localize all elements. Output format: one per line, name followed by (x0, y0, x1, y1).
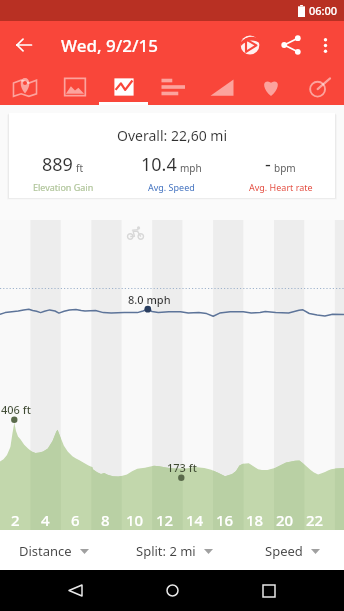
staticText: 06:00 (309, 3, 338, 18)
staticText: 18 (246, 510, 264, 530)
staticText: Overall: 22,60 mi (9, 126, 335, 145)
staticText: - (265, 152, 271, 177)
button[interactable]: Back (0, 21, 48, 69)
button[interactable]: More options (308, 28, 342, 62)
button[interactable]: Heart rate (246, 69, 295, 105)
staticText: 22 (306, 510, 324, 530)
staticText: 12 (156, 510, 174, 530)
staticText: Elevation Gain (33, 181, 94, 193)
staticText: Distance (19, 542, 72, 560)
button[interactable]: Recents (247, 570, 291, 611)
staticText: Avg. Heart rate (249, 181, 313, 193)
staticText: 8 (101, 510, 110, 530)
button[interactable]: Splits (148, 69, 197, 105)
staticText: 2 (11, 510, 20, 530)
staticText: 889 (42, 152, 73, 177)
staticText: Avg. Speed (148, 181, 195, 193)
staticText: Split: 2 mi (136, 542, 196, 560)
staticText: 6 (71, 510, 80, 530)
staticText: 14 (186, 510, 204, 530)
button[interactable]: Replay route (226, 21, 274, 69)
staticText: mph (180, 161, 202, 175)
button[interactable]: Elevation (197, 69, 246, 105)
button[interactable]: Share (274, 28, 308, 62)
staticText: ft (76, 161, 84, 175)
staticText: 4 (41, 510, 50, 530)
button[interactable]: Map (0, 69, 50, 105)
staticText: Speed (265, 542, 303, 560)
button[interactable]: Back (53, 570, 97, 611)
staticText: 10.4 (141, 152, 177, 177)
staticText: 20 (276, 510, 294, 530)
staticText: Wed, 9/2/15 (61, 34, 159, 57)
staticText: 10 (126, 510, 144, 530)
button[interactable]: Photos (50, 69, 99, 105)
button[interactable]: Home (150, 570, 194, 611)
staticText: 406 ft (1, 402, 31, 417)
staticText: 173 ft (167, 460, 197, 475)
button[interactable]: Distance (0, 537, 114, 565)
staticText: 16 (216, 510, 234, 530)
staticText: 8.0 mph (128, 292, 171, 307)
button[interactable]: Charts (99, 69, 148, 105)
button[interactable]: Split: 2 mi (114, 537, 234, 565)
button[interactable]: Speed (232, 537, 344, 565)
staticText: bpm (274, 161, 296, 175)
button[interactable]: Cadence (295, 69, 344, 105)
